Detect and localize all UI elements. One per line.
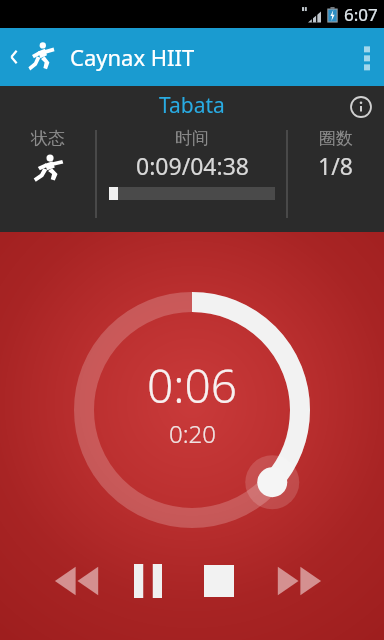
staticText: 0:20: [169, 417, 216, 450]
staticText: 状态: [31, 128, 65, 149]
button[interactable]: Back: [0, 32, 62, 82]
staticText: Tabata: [159, 91, 225, 120]
button[interactable]: More options: [350, 33, 384, 81]
staticText: Caynax HIIT: [70, 42, 195, 72]
staticText: 0:06: [147, 354, 238, 417]
button[interactable]: Previous: [44, 554, 110, 608]
staticText: 0:09/04:38: [136, 150, 249, 181]
button[interactable]: Stop: [194, 555, 244, 607]
button[interactable]: Next: [266, 554, 332, 608]
staticText: 6:07: [344, 3, 378, 26]
button[interactable]: Pause: [124, 554, 172, 608]
staticText: 时间: [175, 128, 209, 149]
staticText: 1/8: [318, 150, 353, 181]
staticText: 圈数: [319, 128, 353, 149]
button[interactable]: Info: [342, 88, 380, 126]
